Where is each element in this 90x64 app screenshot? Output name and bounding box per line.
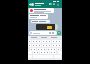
button[interactable] [48,44,51,47]
button[interactable] [33,48,36,51]
button[interactable] [35,44,38,47]
button[interactable] [58,40,61,43]
button[interactable] [57,48,60,51]
button[interactable] [29,31,57,35]
button[interactable] [32,40,35,43]
button[interactable] [48,40,51,43]
button[interactable] [52,40,55,43]
button[interactable] [38,40,41,43]
button[interactable] [55,44,58,47]
button[interactable] [29,14,48,19]
button[interactable] [47,48,50,51]
button[interactable] [30,48,33,51]
button[interactable] [36,51,39,54]
button[interactable]: Send voice message [57,31,61,35]
button[interactable]: Call [53,3,55,5]
button[interactable] [45,44,48,47]
button[interactable] [40,48,43,51]
button[interactable] [32,44,35,47]
button[interactable] [33,51,36,54]
button[interactable] [36,24,58,30]
button[interactable] [50,48,53,51]
button[interactable] [31,20,50,23]
button[interactable] [29,8,54,13]
button[interactable] [28,40,31,43]
button[interactable]: More options [57,3,59,7]
button[interactable]: Video call [49,3,52,5]
button[interactable]: Back [29,3,31,6]
button[interactable] [31,3,34,6]
button[interactable] [45,40,48,43]
button[interactable] [52,44,55,47]
button[interactable] [55,40,58,43]
button[interactable] [46,51,49,54]
button[interactable] [38,44,41,47]
button[interactable] [43,48,46,51]
button[interactable] [58,44,61,47]
button[interactable] [37,48,40,51]
button[interactable] [28,44,31,47]
button[interactable] [53,51,56,54]
button[interactable] [42,40,45,43]
button[interactable] [50,51,53,54]
button[interactable] [35,40,38,43]
button[interactable] [42,44,45,47]
button[interactable] [53,48,56,51]
button[interactable] [43,51,46,54]
button[interactable] [40,51,43,54]
